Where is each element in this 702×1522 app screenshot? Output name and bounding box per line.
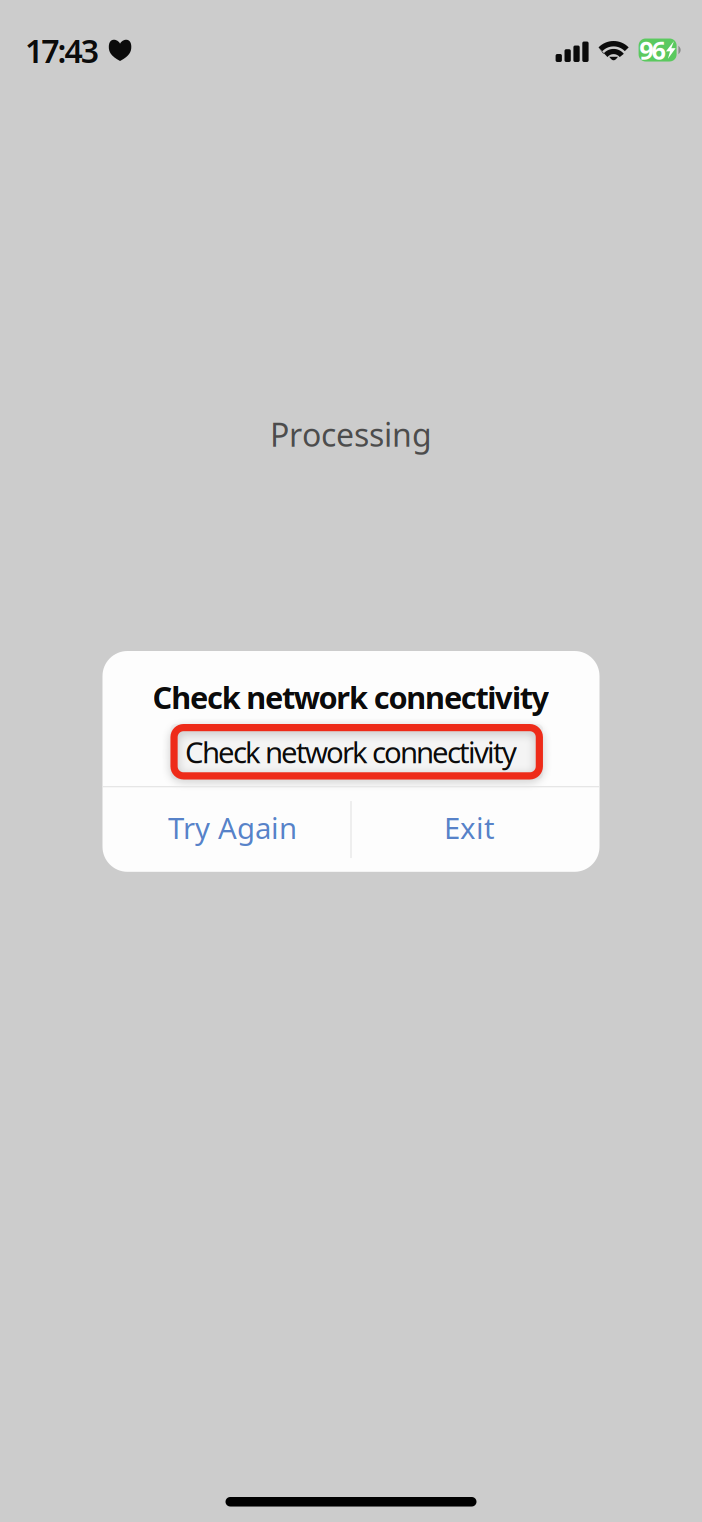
staticText: Check network connectivity — [152, 677, 549, 717]
staticText: Check network connectivity — [185, 732, 517, 771]
staticText: Processing — [270, 413, 432, 455]
staticText: 17:43 — [25, 29, 99, 72]
staticText: 96 — [639, 33, 666, 67]
staticText: Try Again — [168, 808, 297, 847]
button[interactable]: Exit — [352, 787, 599, 872]
staticText: Exit — [444, 808, 495, 847]
button[interactable]: Try Again — [102, 787, 350, 872]
